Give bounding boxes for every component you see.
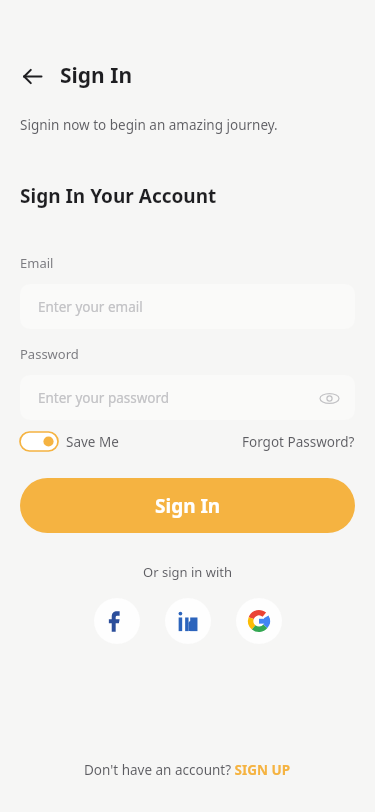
staticText: Or sign in with bbox=[143, 563, 232, 581]
button[interactable]: Enter your password bbox=[20, 375, 355, 420]
staticText: Enter your email bbox=[38, 298, 143, 316]
staticText: Email bbox=[20, 254, 54, 272]
button[interactable]: Don't have an account? SIGN UP bbox=[84, 761, 291, 779]
button[interactable]: Sign In bbox=[20, 478, 355, 533]
button[interactable]: Forgot Password? bbox=[242, 433, 355, 451]
button[interactable]: Enter your email bbox=[20, 284, 355, 329]
staticText: Sign In bbox=[155, 493, 221, 519]
staticText: Sign In Your Account bbox=[20, 183, 217, 209]
button[interactable]: Show password bbox=[315, 384, 343, 412]
button[interactable]: Save Me bbox=[20, 432, 119, 451]
staticText: Password bbox=[20, 345, 79, 363]
staticText: Signin now to begin an amazing journey. bbox=[20, 116, 278, 134]
staticText: Sign In bbox=[60, 61, 133, 90]
button[interactable]: Sign in with Google bbox=[236, 598, 282, 644]
button[interactable]: Back bbox=[18, 62, 46, 90]
button[interactable]: Sign in with LinkedIn bbox=[165, 598, 211, 644]
staticText: Enter your password bbox=[38, 389, 170, 407]
button[interactable]: Sign in with Facebook bbox=[94, 598, 140, 644]
staticText: Save Me bbox=[66, 433, 119, 451]
